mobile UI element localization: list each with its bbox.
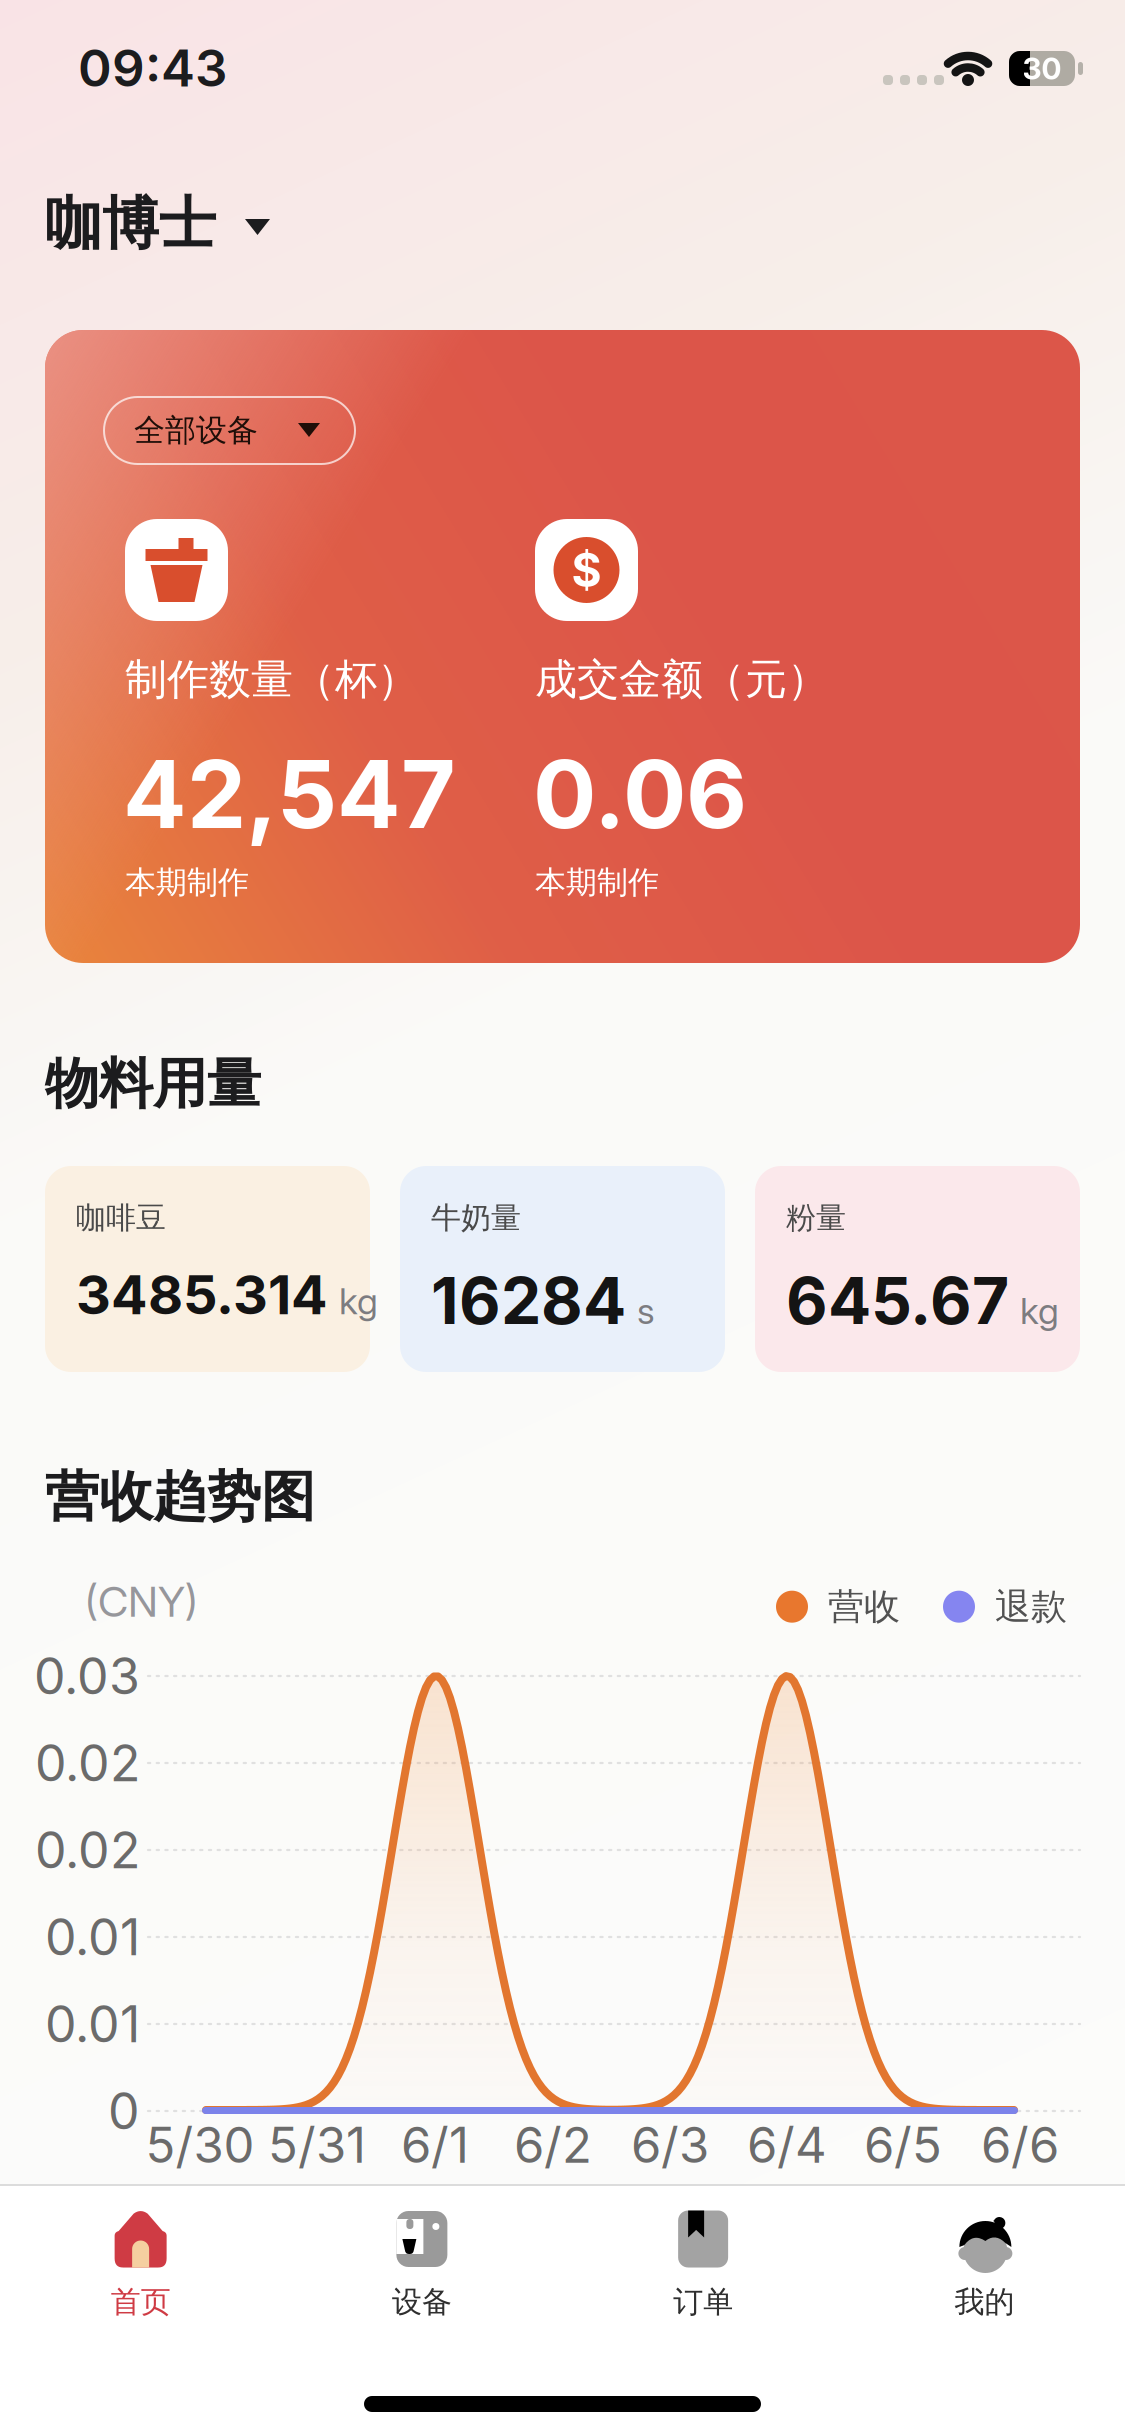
- staticText: (CNY): [85, 1576, 198, 1627]
- staticText: 6/1: [401, 2115, 469, 2175]
- staticText: 6/3: [631, 2115, 709, 2175]
- staticText: 0.02: [35, 1820, 140, 1880]
- staticText: 0.06: [533, 737, 747, 851]
- staticText: 0: [108, 2081, 140, 2141]
- staticText: 30: [1022, 50, 1061, 87]
- staticText: 物料用量: [45, 1050, 261, 1118]
- staticText: 0.02: [35, 1733, 140, 1793]
- staticText: 16284: [431, 1262, 626, 1339]
- staticText: 咖博士: [45, 188, 216, 260]
- staticText: 0.01: [45, 1994, 140, 2054]
- button[interactable]: 设备: [281, 2210, 562, 2321]
- staticText: kg: [1020, 1289, 1059, 1333]
- staticText: 5/31: [268, 2115, 366, 2175]
- staticText: 咖啡豆: [76, 1199, 166, 1237]
- button[interactable]: 全部设备: [103, 396, 356, 465]
- staticText: s: [637, 1289, 655, 1333]
- staticText: 42,547: [123, 737, 456, 851]
- button[interactable]: 首页: [0, 2210, 281, 2321]
- staticText: 6/5: [864, 2115, 942, 2175]
- staticText: 本期制作: [535, 863, 659, 902]
- staticText: 我的: [954, 2283, 1014, 2321]
- staticText: 粉量: [786, 1199, 846, 1237]
- staticText: 645.67: [786, 1262, 1009, 1339]
- staticText: kg: [339, 1279, 378, 1323]
- staticText: 09:43: [78, 37, 227, 99]
- staticText: 营收: [828, 1584, 900, 1629]
- staticText: 6/2: [514, 2115, 592, 2175]
- staticText: 5/30: [145, 2115, 254, 2175]
- staticText: $: [571, 542, 601, 598]
- staticText: 0.01: [45, 1907, 140, 1967]
- staticText: 本期制作: [125, 863, 249, 902]
- staticText: 订单: [673, 2283, 733, 2321]
- staticText: 退款: [995, 1584, 1067, 1629]
- staticText: 制作数量（杯）: [125, 653, 419, 706]
- staticText: 6/4: [747, 2115, 827, 2175]
- staticText: 营收趋势图: [45, 1463, 315, 1531]
- button[interactable]: 订单: [562, 2210, 844, 2321]
- staticText: 0.03: [34, 1646, 140, 1706]
- staticText: 首页: [111, 2283, 171, 2321]
- staticText: 全部设备: [134, 411, 258, 450]
- button[interactable]: 咖博士: [45, 188, 295, 268]
- staticText: 成交金额（元）: [535, 653, 829, 706]
- staticText: 设备: [392, 2283, 452, 2321]
- staticText: 6/6: [981, 2115, 1059, 2175]
- staticText: 3485.314: [76, 1262, 328, 1327]
- button[interactable]: 我的: [844, 2210, 1125, 2321]
- staticText: 牛奶量: [431, 1199, 521, 1237]
